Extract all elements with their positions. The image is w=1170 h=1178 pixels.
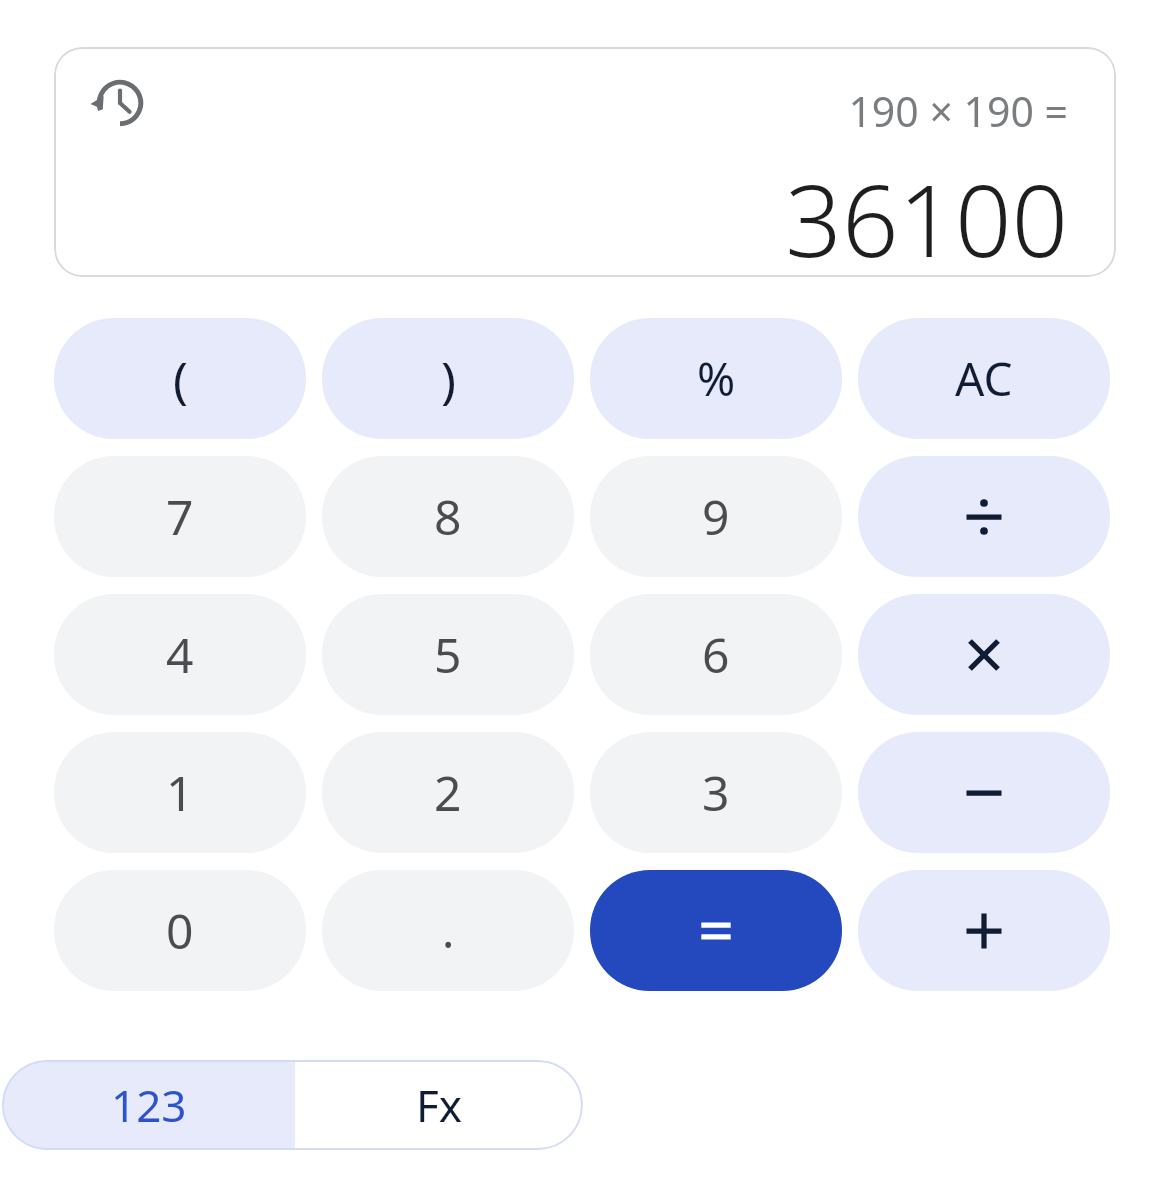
staticText: 190 × 190 = bbox=[848, 83, 1068, 139]
button[interactable]: % bbox=[590, 318, 842, 439]
button[interactable]: 123 bbox=[2, 1060, 295, 1150]
button[interactable]: Divide bbox=[858, 456, 1110, 577]
staticText: Fx bbox=[416, 1075, 463, 1135]
button[interactable]: Subtract bbox=[858, 732, 1110, 853]
staticText: 5 bbox=[434, 622, 462, 687]
button[interactable]: Add bbox=[858, 870, 1110, 991]
staticText: 123 bbox=[111, 1075, 187, 1135]
staticText: 8 bbox=[434, 484, 462, 549]
staticText: . bbox=[442, 899, 455, 962]
staticText: % bbox=[697, 347, 736, 410]
staticText: 4 bbox=[166, 622, 194, 687]
button[interactable]: 0 bbox=[54, 870, 306, 991]
button[interactable]: 3 bbox=[590, 732, 842, 853]
button[interactable]: Multiply bbox=[858, 594, 1110, 715]
button[interactable]: Fx bbox=[295, 1060, 583, 1150]
staticText: ( bbox=[173, 345, 188, 413]
staticText: 9 bbox=[702, 484, 730, 549]
button[interactable]: ) bbox=[322, 318, 574, 439]
staticText: 1 bbox=[166, 760, 194, 825]
staticText: ) bbox=[441, 345, 456, 413]
button[interactable]: Equals bbox=[590, 870, 842, 991]
button[interactable]: 2 bbox=[322, 732, 574, 853]
staticText: AC bbox=[955, 347, 1013, 410]
button[interactable]: 5 bbox=[322, 594, 574, 715]
staticText: 3 bbox=[702, 760, 730, 825]
staticText: 36100 bbox=[785, 151, 1068, 277]
staticText: 0 bbox=[166, 898, 194, 963]
staticText: 6 bbox=[702, 622, 730, 687]
button[interactable]: 1 bbox=[54, 732, 306, 853]
button[interactable]: 6 bbox=[590, 594, 842, 715]
button[interactable]: ( bbox=[54, 318, 306, 439]
button[interactable]: 4 bbox=[54, 594, 306, 715]
button[interactable]: History bbox=[84, 67, 156, 139]
button[interactable]: AC bbox=[858, 318, 1110, 439]
button[interactable]: 8 bbox=[322, 456, 574, 577]
staticText: 2 bbox=[434, 760, 462, 825]
button[interactable]: 7 bbox=[54, 456, 306, 577]
button[interactable]: 9 bbox=[590, 456, 842, 577]
button[interactable]: . bbox=[322, 870, 574, 991]
staticText: 7 bbox=[166, 484, 194, 549]
